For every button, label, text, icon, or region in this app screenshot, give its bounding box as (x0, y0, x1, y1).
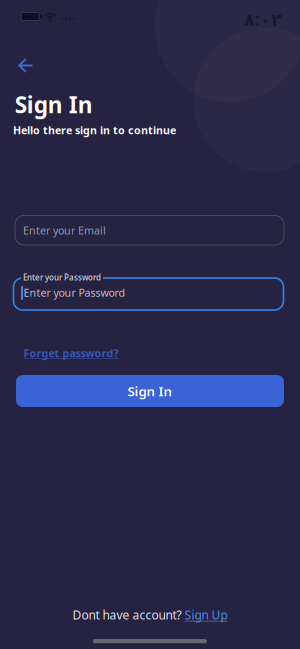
staticText: Sign In (127, 382, 172, 400)
staticText: Enter your Password (23, 272, 101, 283)
staticText: Sign In (15, 89, 93, 120)
staticText: Enter your Password (23, 285, 125, 300)
staticText: ٨:٠٢ (244, 7, 282, 30)
staticText: Dont have account? (72, 607, 184, 623)
staticText: Hello there sign in to continue (13, 123, 176, 137)
staticText: Enter your Email (23, 223, 106, 237)
button[interactable]: Forget password? (23, 346, 118, 360)
staticText: Sign Up (184, 607, 227, 623)
button[interactable]: Enter your Password (13, 278, 283, 310)
button[interactable]: Sign In (16, 375, 284, 407)
staticText: Forget password? (23, 346, 118, 360)
button[interactable]: Sign Up (184, 607, 227, 623)
button[interactable] (18, 57, 34, 73)
button[interactable]: Enter your Email (15, 215, 284, 245)
